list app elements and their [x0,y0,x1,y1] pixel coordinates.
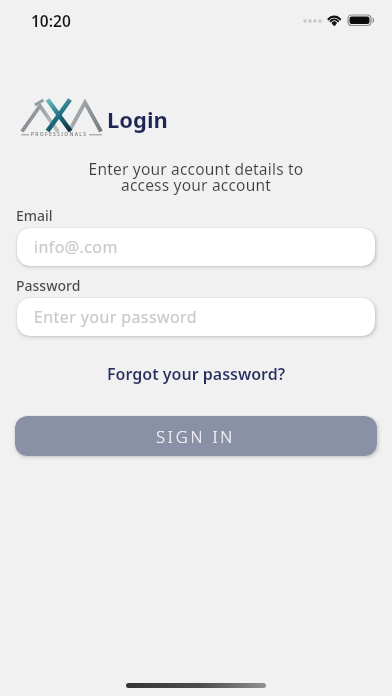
staticText: Password [16,276,81,295]
staticText: Enter your password [34,306,197,328]
staticText: P R O F E S S I O N A L S [31,131,86,138]
button[interactable]: info@.com [17,228,375,266]
staticText: Email [16,206,53,225]
button[interactable]: Enter your password [17,298,375,336]
staticText: info@.com [34,236,118,258]
button[interactable]: Forgot your password? [107,363,286,385]
staticText: 10:20 [31,10,71,31]
staticText: SIGN IN [156,425,236,447]
button[interactable]: SIGN IN [15,416,377,456]
staticText: Enter your account details to access you… [0,158,392,195]
staticText: Login [107,104,168,134]
